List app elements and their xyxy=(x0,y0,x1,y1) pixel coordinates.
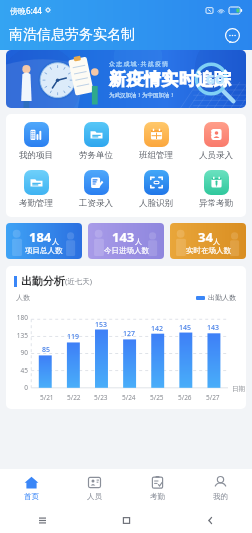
button[interactable]: 众志成城·共战疫情 xyxy=(6,50,246,108)
staticText: 考勤 xyxy=(150,492,165,501)
staticText: 南浩信息劳务实名制 xyxy=(9,26,135,44)
staticText: 今日进场人数 xyxy=(104,246,149,255)
staticText: 34 xyxy=(198,228,213,246)
staticText: 184 xyxy=(29,228,52,246)
button[interactable]: Home xyxy=(84,507,168,533)
staticText: 人数 xyxy=(16,293,30,302)
staticText: 5/23 xyxy=(94,393,108,402)
staticText: 劳务单位 xyxy=(79,150,113,161)
staticText: 5/22 xyxy=(67,393,81,402)
button[interactable]: 班组管理 xyxy=(126,121,186,162)
staticText: 为武汉加油！为中国加油！ xyxy=(109,92,175,99)
staticText: 人 xyxy=(135,237,142,246)
staticText: 出勤分析 xyxy=(21,274,65,288)
button[interactable]: 首页 xyxy=(0,469,63,507)
staticText: 85 xyxy=(42,345,51,355)
staticText: 人 xyxy=(213,237,220,246)
button[interactable]: 184 xyxy=(6,223,82,259)
button[interactable]: 我的 xyxy=(189,469,252,507)
staticText: 135 xyxy=(16,331,28,340)
staticText: 0 xyxy=(24,383,28,392)
staticText: 119 xyxy=(67,332,80,342)
staticText: 127 xyxy=(123,329,136,339)
button[interactable]: 消息 xyxy=(221,24,243,46)
staticText: 人 xyxy=(52,237,59,246)
button[interactable]: 143 xyxy=(88,223,164,259)
staticText: 142 xyxy=(151,324,164,334)
staticText: 实时在场人数 xyxy=(186,246,231,255)
staticText: 人脸识别 xyxy=(139,198,173,209)
staticText: 考勤管理 xyxy=(19,198,53,209)
button[interactable]: 人员 xyxy=(63,469,126,507)
staticText: 新疫情实时追踪 xyxy=(109,69,232,90)
staticText: 日期 xyxy=(232,385,245,393)
button[interactable]: 考勤管理 xyxy=(6,169,66,210)
staticText: 众志成城·共战疫情 xyxy=(109,60,170,68)
button[interactable]: 34 xyxy=(170,223,246,259)
button[interactable]: 我的项目 xyxy=(6,121,66,162)
staticText: 90 xyxy=(20,348,28,357)
staticText: 人员 xyxy=(87,492,102,501)
staticText: 出勤人数 xyxy=(208,293,236,302)
staticText: 5/27 xyxy=(206,393,220,402)
staticText: 5/25 xyxy=(150,393,164,402)
staticText: GO xyxy=(206,71,225,87)
staticText: 项目总人数 xyxy=(25,246,63,255)
button[interactable]: Back xyxy=(168,507,252,533)
staticText: 5/26 xyxy=(178,393,192,402)
button[interactable]: 异常考勤 xyxy=(186,169,246,210)
staticText: 工资录入 xyxy=(79,198,113,209)
staticText: 145 xyxy=(179,323,192,333)
staticText: 异常考勤 xyxy=(199,198,233,209)
staticText: 我的项目 xyxy=(19,150,53,161)
staticText: 143 xyxy=(112,228,135,246)
button[interactable]: 人脸识别 xyxy=(126,169,186,210)
staticText: 153 xyxy=(95,320,108,330)
staticText: 傍晚6:44 xyxy=(10,5,42,16)
button[interactable]: 考勤 xyxy=(126,469,189,507)
staticText: 45 xyxy=(20,366,28,375)
staticText: 人员录入 xyxy=(199,150,233,161)
staticText: 我的 xyxy=(213,492,228,501)
staticText: (近七天) xyxy=(65,276,92,286)
staticText: 143 xyxy=(207,323,220,333)
staticText: 首页 xyxy=(24,492,39,501)
button[interactable]: 劳务单位 xyxy=(66,121,126,162)
staticText: 5/24 xyxy=(122,393,136,402)
staticText: 180 xyxy=(16,313,28,322)
button[interactable]: 人员录入 xyxy=(186,121,246,162)
staticText: 班组管理 xyxy=(139,150,173,161)
button[interactable]: Recents xyxy=(0,507,84,533)
staticText: 5/21 xyxy=(40,393,54,402)
button[interactable]: 工资录入 xyxy=(66,169,126,210)
